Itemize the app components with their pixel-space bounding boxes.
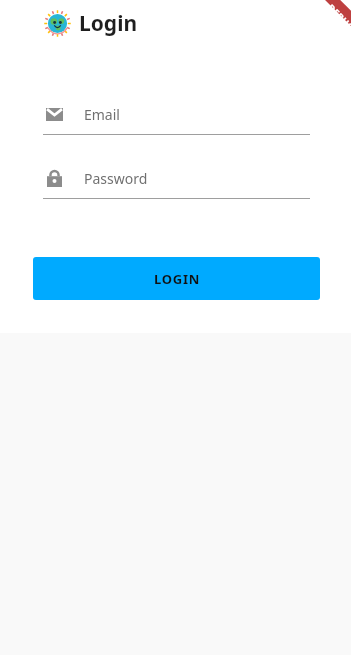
- staticText: LOGIN: [154, 270, 200, 288]
- staticText: Login: [79, 9, 138, 38]
- button[interactable]: Email: [43, 99, 310, 129]
- button[interactable]: LOGIN: [33, 257, 320, 300]
- staticText: DEBUG: [326, 1, 351, 33]
- other: Debug banner: [297, 0, 351, 54]
- staticText: Email: [84, 105, 120, 124]
- button[interactable]: Password: [43, 163, 310, 193]
- staticText: Password: [84, 169, 148, 188]
